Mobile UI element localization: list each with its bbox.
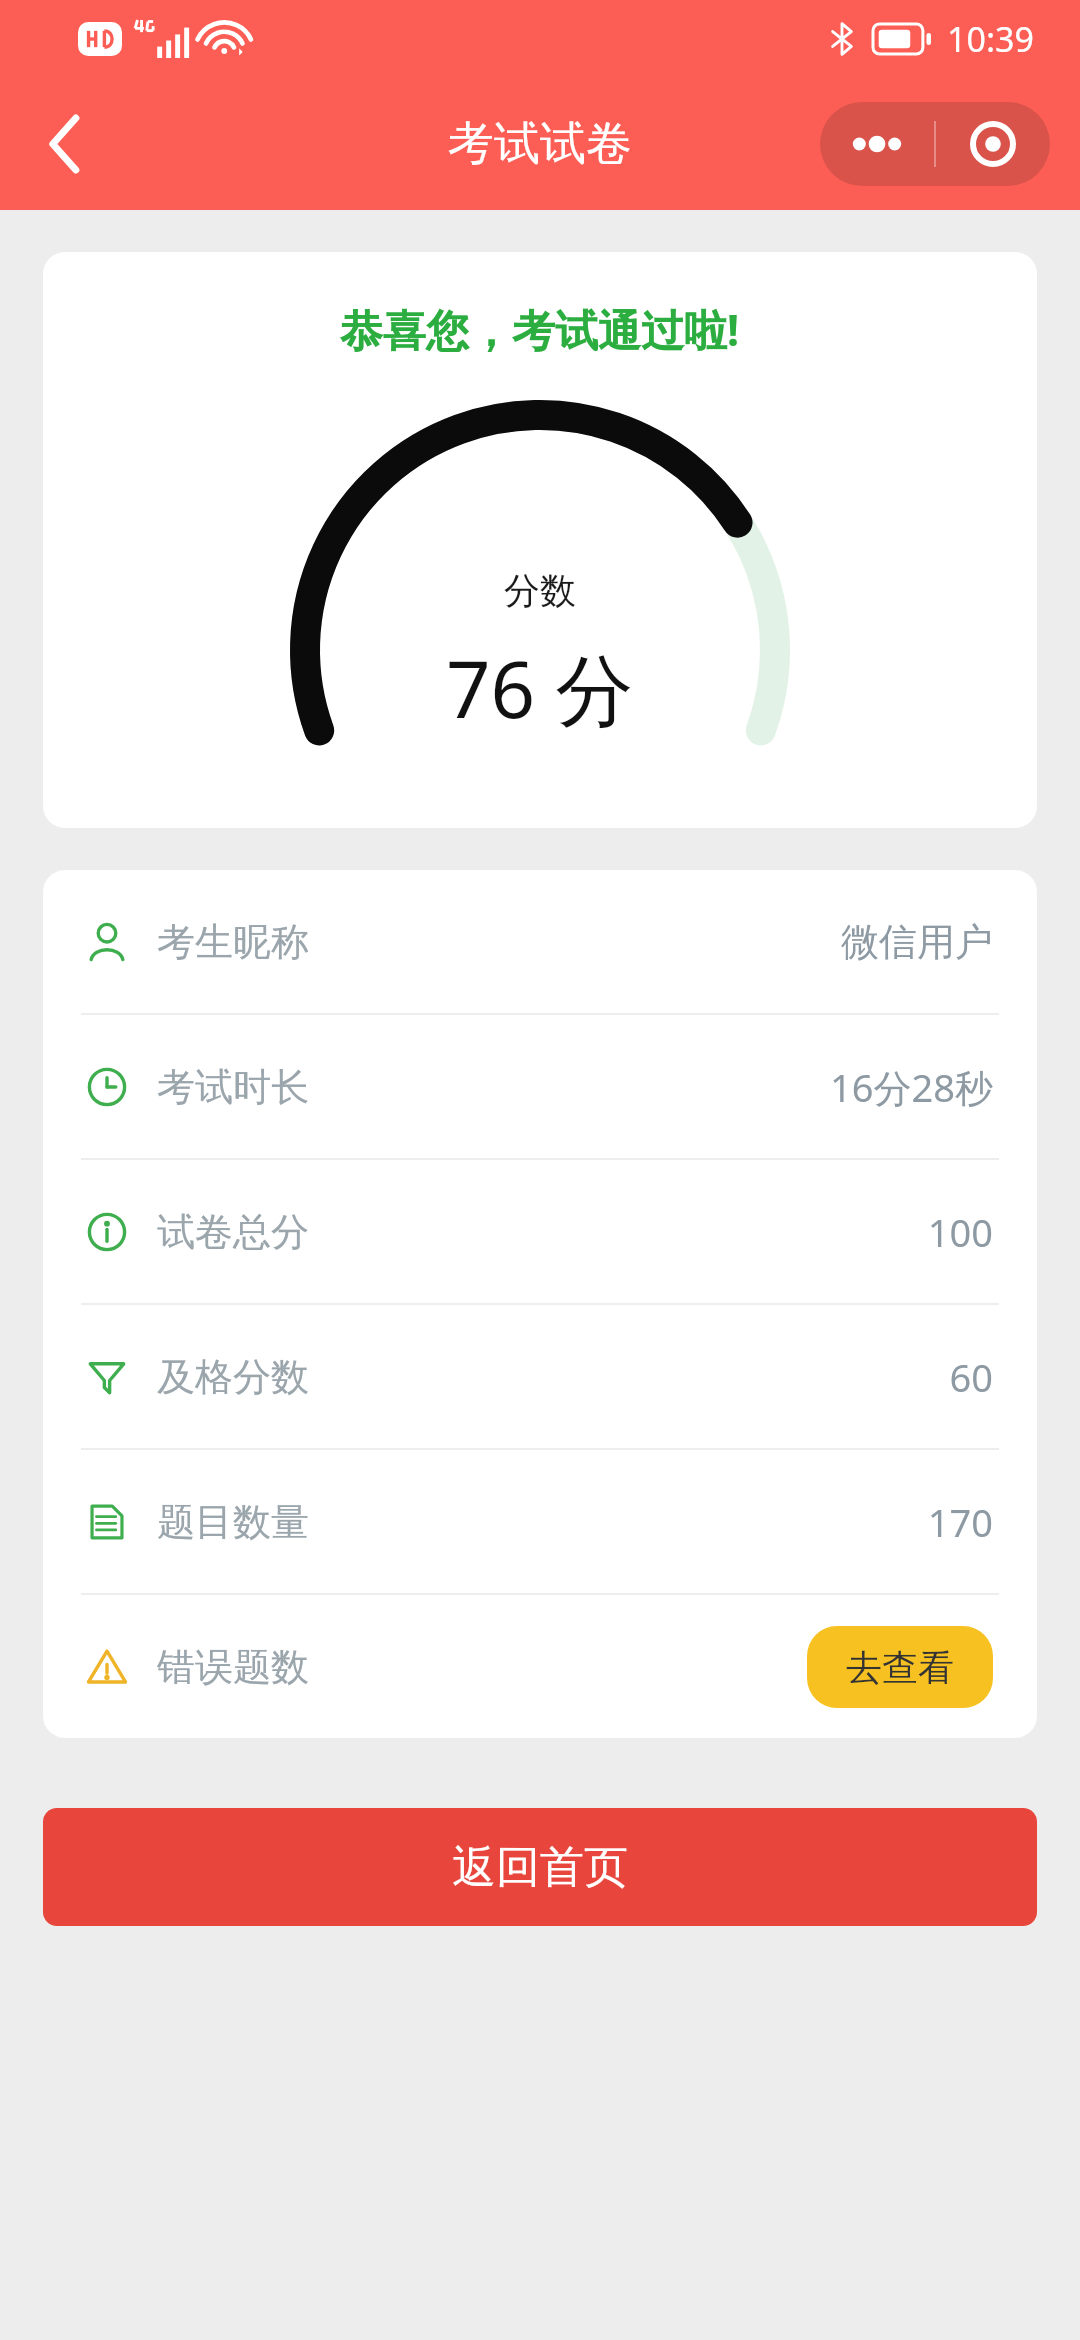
button[interactable]: 去查看 — [807, 1626, 993, 1708]
staticText: 100 — [927, 1206, 993, 1258]
staticText: 微信用户 — [841, 918, 993, 966]
button[interactable]: More — [820, 102, 934, 186]
staticText: 170 — [927, 1496, 993, 1548]
staticText: 考生昵称 — [157, 918, 309, 966]
staticText: 60 — [949, 1351, 993, 1403]
button[interactable]: 考生昵称 — [43, 870, 1037, 1013]
staticText: 76 分 — [446, 635, 634, 742]
staticText: 考试时长 — [157, 1063, 309, 1111]
staticText: 10:39 — [947, 16, 1034, 62]
button[interactable]: 试卷总分 — [43, 1160, 1037, 1303]
button[interactable]: 及格分数 — [43, 1305, 1037, 1448]
staticText: 分数 — [504, 568, 576, 613]
button[interactable]: 考试时长 — [43, 1015, 1037, 1158]
staticText: 去查看 — [846, 1645, 954, 1690]
staticText: 及格分数 — [157, 1353, 309, 1401]
staticText: 恭喜您，考试通过啦! — [340, 300, 740, 359]
staticText: 错误题数 — [157, 1643, 309, 1691]
button[interactable]: 错误题数 — [43, 1595, 1037, 1738]
staticText: 考试试卷 — [448, 115, 632, 173]
button[interactable]: Back — [20, 99, 110, 189]
button[interactable]: Close — [936, 102, 1050, 186]
button[interactable]: 题目数量 — [43, 1450, 1037, 1593]
staticText: 试卷总分 — [157, 1208, 309, 1256]
staticText: 题目数量 — [157, 1498, 309, 1546]
staticText: 16分28秒 — [830, 1061, 993, 1113]
staticText: 返回首页 — [452, 1840, 628, 1895]
button[interactable]: 返回首页 — [43, 1808, 1037, 1926]
